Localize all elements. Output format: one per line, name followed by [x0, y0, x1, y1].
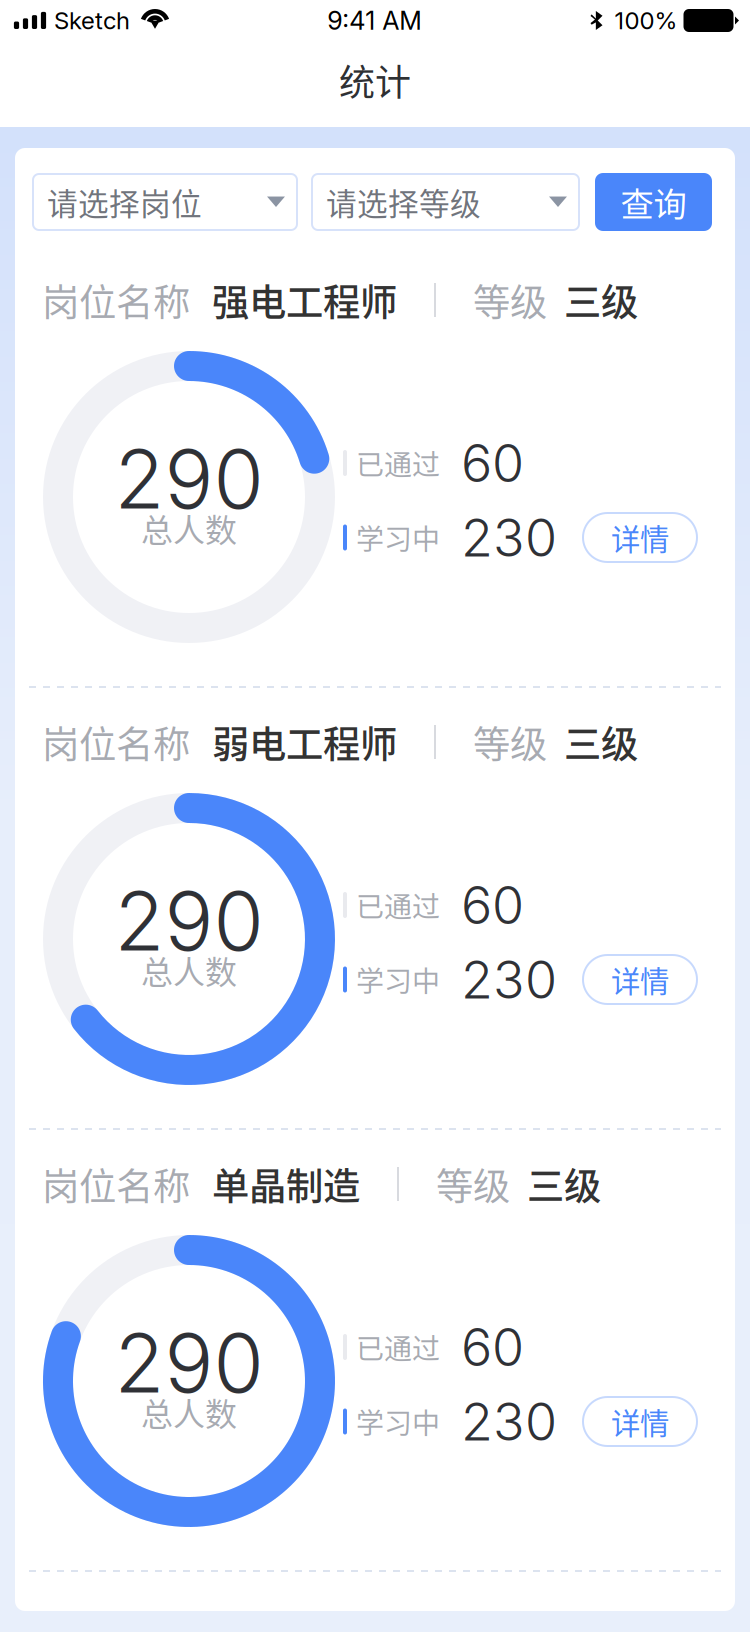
staticText: 60: [461, 431, 524, 494]
staticText: 详情: [611, 958, 669, 1001]
staticText: 总人数: [141, 1389, 237, 1435]
button[interactable]: 详情: [582, 954, 698, 1005]
staticText: 290: [114, 872, 263, 970]
button[interactable]: 请选择岗位: [32, 173, 298, 231]
staticText: 学习中: [356, 959, 440, 1000]
staticText: 三级: [564, 273, 638, 327]
staticText: 等级: [473, 273, 547, 327]
staticText: 请选择等级: [326, 180, 481, 224]
staticText: 岗位名称: [42, 715, 190, 769]
staticText: 已通过: [356, 1327, 440, 1367]
staticText: 强电工程师: [212, 273, 397, 327]
staticText: 弱电工程师: [212, 715, 397, 769]
staticText: 100%: [614, 6, 677, 35]
staticText: 290: [114, 1314, 263, 1412]
staticText: 请选择岗位: [47, 180, 202, 224]
staticText: 三级: [564, 715, 638, 769]
staticText: 学习中: [356, 1401, 440, 1442]
staticText: 230: [461, 1390, 557, 1453]
staticText: 已通过: [356, 885, 440, 925]
staticText: 总人数: [141, 947, 237, 993]
staticText: Sketch: [54, 6, 130, 35]
staticText: 岗位名称: [42, 1157, 190, 1211]
staticText: 查询: [620, 178, 686, 226]
button[interactable]: 请选择等级: [311, 173, 580, 231]
staticText: 详情: [611, 516, 669, 559]
staticText: 单晶制造: [212, 1157, 360, 1211]
staticText: 已通过: [356, 443, 440, 483]
staticText: 290: [114, 430, 263, 528]
staticText: 60: [461, 873, 524, 936]
button[interactable]: 详情: [582, 512, 698, 563]
staticText: 总人数: [141, 505, 237, 551]
staticText: 详情: [611, 1400, 669, 1443]
staticText: 统计: [339, 54, 411, 106]
staticText: 三级: [527, 1157, 601, 1211]
staticText: 9:41 AM: [327, 5, 422, 36]
staticText: 学习中: [356, 517, 440, 558]
staticText: 230: [461, 506, 557, 569]
staticText: 230: [461, 948, 557, 1011]
staticText: 等级: [436, 1157, 510, 1211]
button[interactable]: 详情: [582, 1396, 698, 1447]
staticText: 60: [461, 1315, 524, 1378]
staticText: 等级: [473, 715, 547, 769]
button[interactable]: 查询: [595, 173, 712, 231]
staticText: 岗位名称: [42, 273, 190, 327]
